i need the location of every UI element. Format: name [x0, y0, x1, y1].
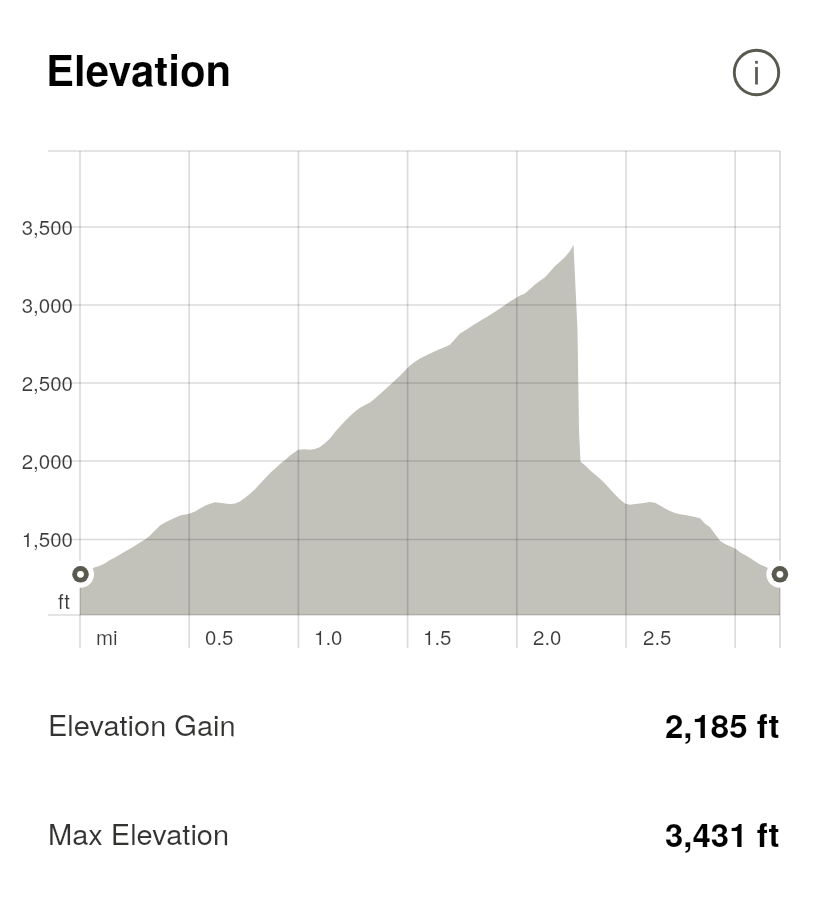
staticText: mi: [96, 621, 118, 650]
staticText: 2.5: [643, 621, 672, 650]
button[interactable]: Max Elevation: [0, 801, 828, 865]
staticText: 3,000: [2, 289, 73, 318]
staticText: 0.5: [205, 621, 234, 650]
staticText: ft: [0, 585, 70, 614]
staticText: 3,431 ft: [665, 810, 780, 857]
staticText: 2,500: [2, 367, 73, 396]
staticText: Max Elevation: [48, 812, 230, 854]
staticText: Elevation: [46, 39, 232, 99]
staticText: 1.5: [423, 621, 452, 650]
staticText: 1,500: [2, 523, 73, 552]
staticText: Elevation Gain: [48, 703, 236, 745]
staticText: 1.0: [314, 621, 343, 650]
button[interactable]: Info about elevation: [732, 48, 781, 97]
staticText: 3,500: [2, 211, 73, 240]
staticText: 2,185 ft: [665, 701, 780, 748]
other: Elevation profile chart: [0, 0, 828, 910]
button[interactable]: Elevation Gain: [0, 692, 828, 756]
staticText: 2,000: [2, 445, 73, 474]
staticText: 2.0: [533, 621, 562, 650]
